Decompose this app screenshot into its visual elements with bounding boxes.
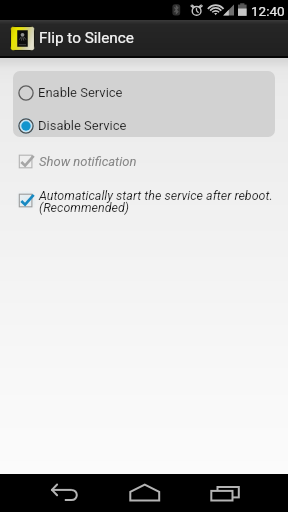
button[interactable]: Recent apps xyxy=(192,474,288,512)
button[interactable]: Home xyxy=(96,474,192,512)
button[interactable]: Show notification xyxy=(0,152,288,172)
staticText: Enable Service xyxy=(38,85,123,100)
button[interactable]: Back xyxy=(0,474,96,512)
staticText: Disable Service xyxy=(38,118,127,133)
button[interactable]: Enable Service xyxy=(13,76,275,109)
staticText: Flip to Silence xyxy=(39,29,134,47)
staticText: 12:40 xyxy=(251,3,285,19)
staticText: Show notification xyxy=(39,154,137,169)
button[interactable]: Disable Service xyxy=(13,109,275,137)
staticText: Automatically start the service after re… xyxy=(39,188,273,215)
button[interactable]: Automatically start the service after re… xyxy=(0,191,288,218)
